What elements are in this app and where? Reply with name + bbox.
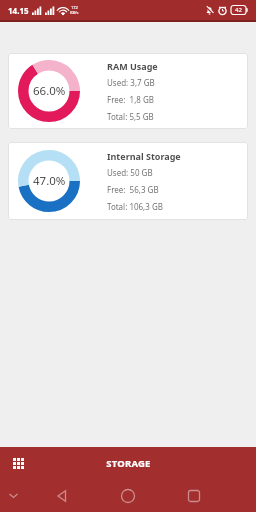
staticText: Internal Storage <box>107 150 181 162</box>
button[interactable]: 66.0% <box>8 53 248 129</box>
staticText: 42 <box>235 6 242 14</box>
staticText: Total: 106,3 GB <box>107 201 163 212</box>
button[interactable] <box>11 456 25 470</box>
staticText: KB/s <box>70 10 79 15</box>
staticText: Free: 56,3 GB <box>107 184 159 195</box>
staticText: STORAGE <box>106 457 151 470</box>
button[interactable] <box>42 479 82 512</box>
staticText: Used: 50 GB <box>107 167 153 178</box>
staticText: RAM Usage <box>107 60 158 72</box>
button[interactable] <box>9 491 18 500</box>
staticText: Used: 3,7 GB <box>107 77 155 88</box>
staticText: 14.15 <box>8 5 29 16</box>
button[interactable] <box>108 479 148 512</box>
staticText: Free: 1,8 GB <box>107 94 155 105</box>
staticText: 47.0% <box>33 173 66 189</box>
staticText: 66.0% <box>33 83 66 99</box>
staticText: 172 <box>71 5 78 10</box>
staticText: Total: 5,5 GB <box>107 111 154 122</box>
button[interactable]: 47.0% <box>8 142 248 220</box>
button[interactable] <box>174 479 214 512</box>
